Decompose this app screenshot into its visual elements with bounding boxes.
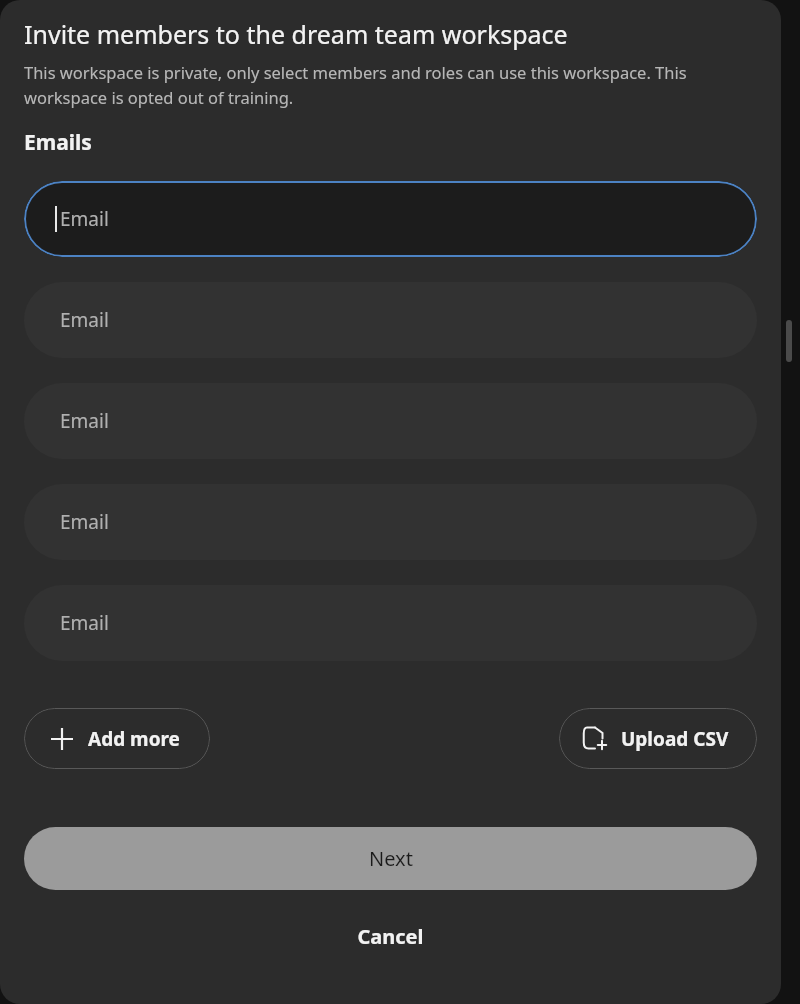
button[interactable]: Next — [24, 827, 757, 890]
staticText: This workspace is private, only select m… — [24, 61, 723, 108]
button[interactable]: Email — [24, 484, 757, 560]
staticText: Invite members to the dream team workspa… — [24, 17, 568, 51]
button[interactable]: Cancel — [24, 910, 757, 962]
button[interactable]: Email — [24, 585, 757, 661]
staticText: Add more — [88, 726, 180, 752]
other: Upload CSV — [583, 726, 608, 751]
staticText: Email — [60, 509, 109, 535]
button[interactable]: Email — [24, 181, 757, 257]
button[interactable]: Upload CSV — [559, 708, 757, 769]
staticText: Email — [60, 610, 109, 636]
staticText: Email — [60, 206, 109, 232]
staticText: Emails — [24, 128, 92, 157]
other: Add more — [50, 727, 74, 751]
button[interactable]: Add more — [24, 708, 210, 769]
button[interactable]: Email — [24, 282, 757, 358]
staticText: Upload CSV — [621, 726, 729, 752]
staticText: Email — [60, 307, 109, 333]
button[interactable]: Email — [24, 383, 757, 459]
staticText: Email — [60, 408, 109, 434]
staticText: Next — [369, 845, 413, 872]
staticText: Cancel — [357, 923, 424, 950]
